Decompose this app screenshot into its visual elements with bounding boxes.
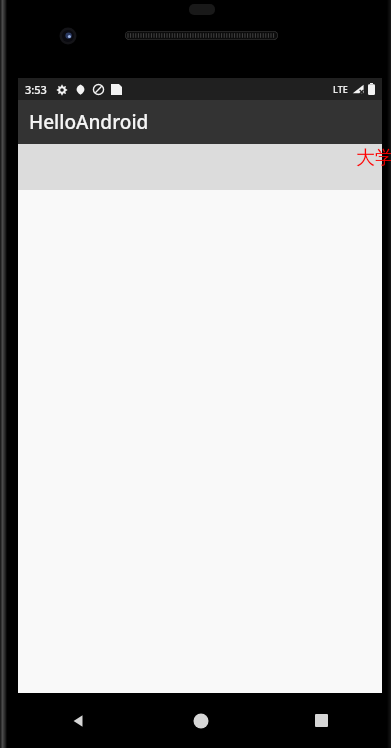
staticText: LTE bbox=[333, 83, 348, 95]
button[interactable]: Back bbox=[18, 693, 140, 748]
button[interactable]: HelloAndroid bbox=[18, 100, 382, 144]
staticText: 大学 bbox=[356, 146, 391, 170]
staticText: 3:53 bbox=[25, 82, 47, 97]
staticText: HelloAndroid bbox=[29, 109, 149, 135]
button[interactable]: Home bbox=[140, 693, 261, 748]
button[interactable]: Recent apps bbox=[261, 693, 382, 748]
